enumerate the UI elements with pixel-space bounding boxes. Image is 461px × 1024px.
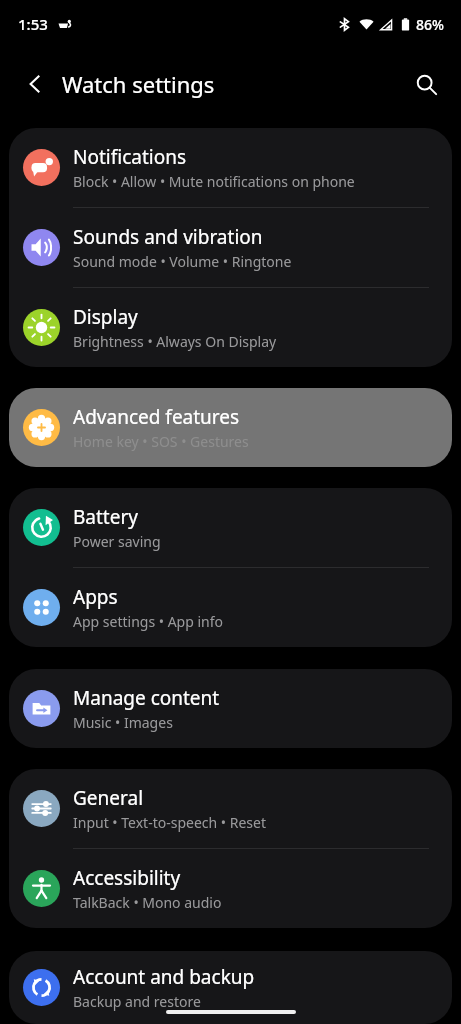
button[interactable]: Search	[403, 61, 449, 107]
staticText: Music • Images	[73, 713, 173, 732]
button[interactable]: Back	[12, 61, 58, 107]
staticText: Input • Text-to-speech • Reset	[73, 813, 266, 832]
staticText: 86%	[416, 15, 444, 34]
staticText: Power saving	[73, 532, 161, 551]
button[interactable]: Manage content	[9, 669, 452, 748]
button[interactable]: Account and backup	[9, 951, 452, 1024]
staticText: Account and backup	[73, 964, 255, 990]
button[interactable]: Display	[9, 288, 452, 367]
staticText: 1:53	[18, 14, 48, 34]
staticText: Accessibility	[73, 865, 181, 891]
button[interactable]: General	[9, 769, 452, 849]
staticText: Watch settings	[62, 69, 215, 99]
button[interactable]: Sounds and vibration	[9, 208, 452, 288]
staticText: TalkBack • Mono audio	[73, 893, 222, 912]
button[interactable]: Notifications	[9, 128, 452, 208]
staticText: Apps	[73, 584, 118, 610]
staticText: Block • Allow • Mute notifications on ph…	[73, 172, 355, 191]
staticText: Battery	[73, 504, 138, 530]
staticText: Brightness • Always On Display	[73, 332, 277, 351]
staticText: Home key • SOS • Gestures	[73, 432, 249, 451]
staticText: Backup and restore	[73, 992, 201, 1011]
staticText: App settings • App info	[73, 612, 223, 631]
staticText: Notifications	[73, 144, 187, 170]
staticText: Display	[73, 304, 138, 330]
button[interactable]: Battery	[9, 488, 452, 568]
button[interactable]: Advanced features	[9, 388, 452, 467]
staticText: General	[73, 785, 144, 811]
staticText: Sound mode • Volume • Ringtone	[73, 252, 292, 271]
staticText: Manage content	[73, 685, 220, 711]
button[interactable]: Apps	[9, 568, 452, 647]
staticText: Advanced features	[73, 404, 240, 430]
staticText: Sounds and vibration	[73, 224, 263, 250]
button[interactable]: Accessibility	[9, 849, 452, 928]
